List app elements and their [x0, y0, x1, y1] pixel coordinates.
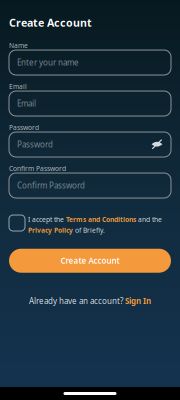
staticText: Enter your name: [17, 57, 79, 68]
staticText: and the: [136, 215, 162, 224]
button[interactable]: Already have an account?: [9, 296, 171, 306]
staticText: Name: [9, 41, 28, 50]
staticText: Terms and Conditions: [66, 215, 136, 224]
button[interactable]: Create Account: [9, 249, 171, 273]
button[interactable]: I accept the: [9, 215, 171, 235]
staticText: Create Account: [9, 15, 92, 30]
staticText: Confirm Password: [17, 180, 85, 191]
staticText: Password: [17, 139, 53, 150]
staticText: Confirm Password: [9, 164, 66, 173]
staticText: Sign In: [125, 296, 151, 306]
staticText: of Briefly.: [73, 226, 105, 235]
staticText: Email: [17, 98, 36, 109]
staticText: Create Account: [60, 255, 119, 266]
staticText: Privacy Policy: [28, 226, 73, 235]
staticText: I accept the: [28, 215, 66, 224]
staticText: Password: [9, 123, 39, 132]
staticText: Already have an account?: [29, 296, 125, 306]
staticText: Email: [9, 82, 27, 91]
